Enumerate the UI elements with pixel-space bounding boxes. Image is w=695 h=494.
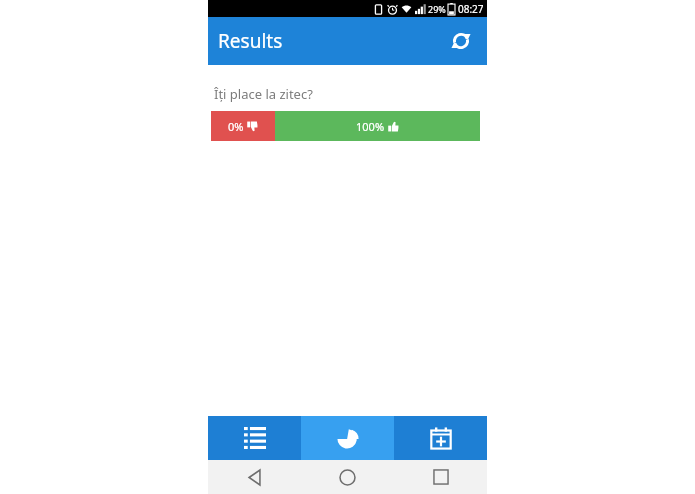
staticText: Îți place la zitec? <box>214 85 313 103</box>
staticText: 0% <box>228 119 244 134</box>
button[interactable]: List <box>208 416 301 460</box>
button[interactable]: Refresh <box>443 23 479 59</box>
staticText: Results <box>218 28 283 54</box>
staticText: 29% <box>428 3 446 15</box>
button[interactable]: 0% <box>211 111 480 141</box>
button[interactable]: Home <box>301 460 394 494</box>
staticText: 08:27 <box>458 2 484 16</box>
staticText: 100% <box>356 119 385 134</box>
button[interactable]: Add event <box>394 416 487 460</box>
button[interactable]: Recent apps <box>394 460 487 494</box>
button[interactable]: Back <box>208 460 301 494</box>
button[interactable]: Results chart <box>301 416 394 460</box>
